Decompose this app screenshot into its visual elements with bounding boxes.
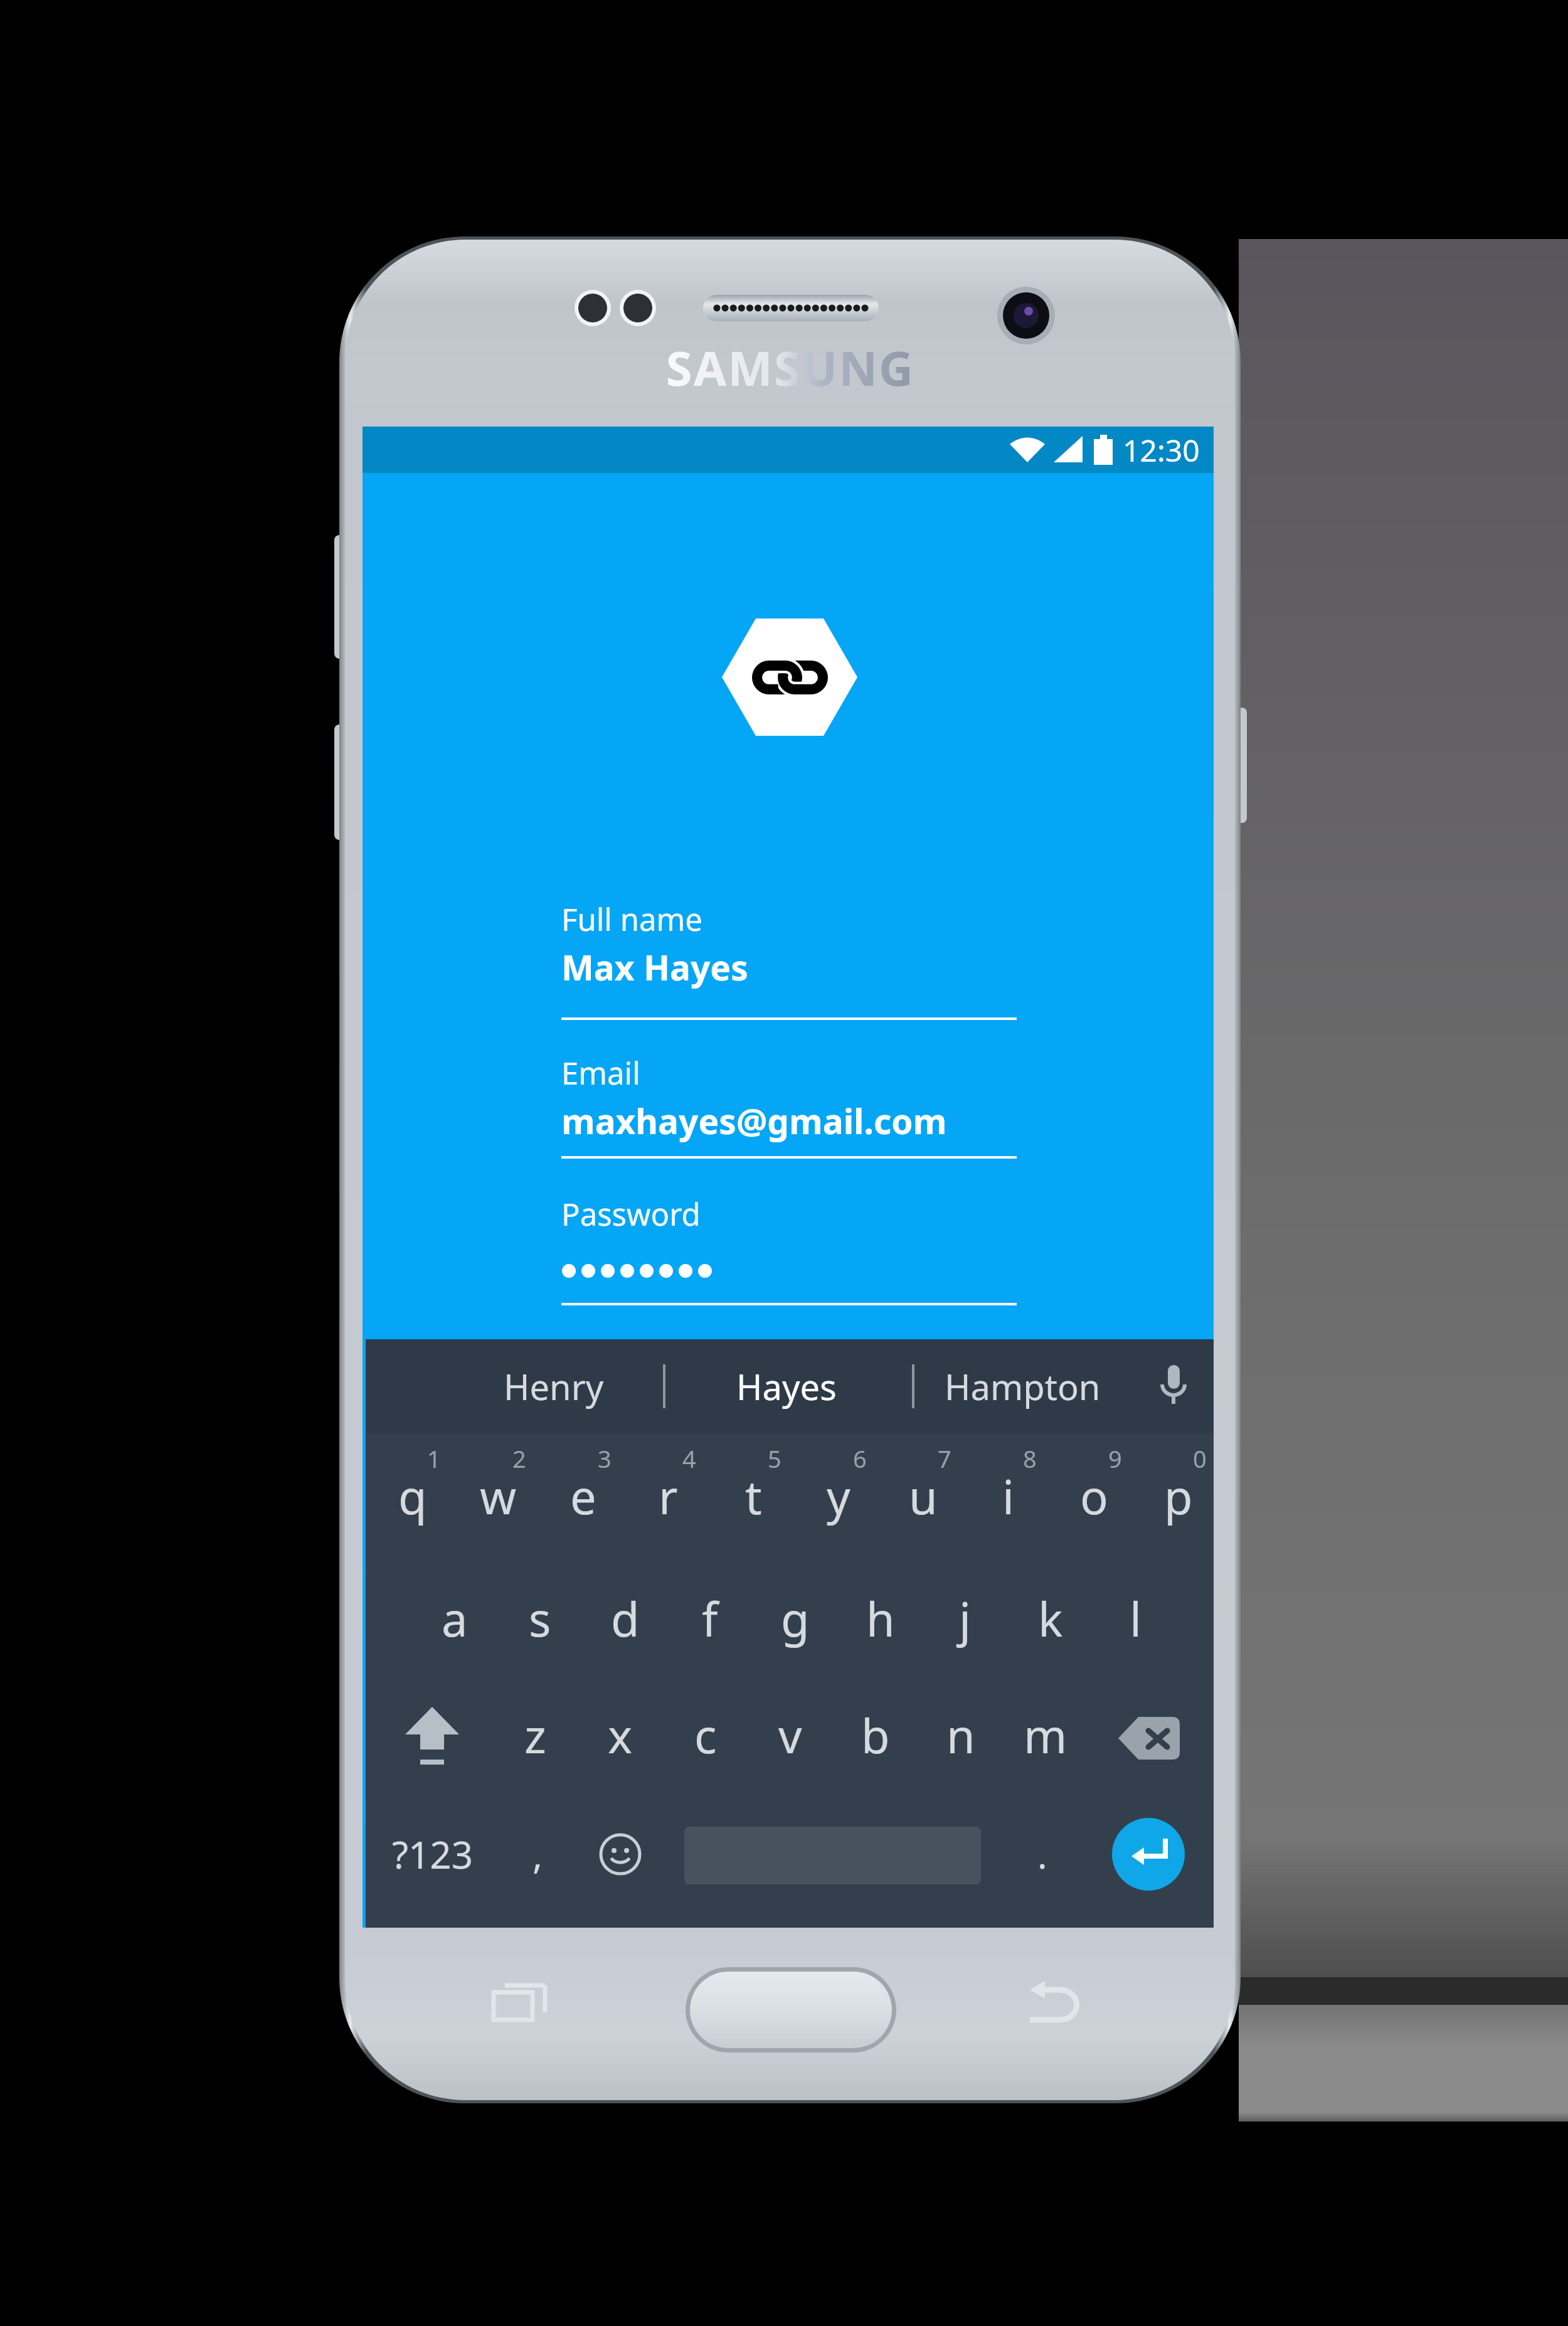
staticText: 8 — [1023, 1442, 1037, 1475]
staticText: q — [398, 1465, 427, 1528]
staticText: x — [608, 1704, 633, 1767]
staticText: 6 — [853, 1442, 867, 1475]
staticText: p — [1164, 1465, 1193, 1528]
staticText: o — [1080, 1465, 1108, 1528]
button[interactable]: Full name — [561, 888, 1017, 1020]
staticText: maxhayes@gmail.com — [561, 1097, 947, 1144]
staticText: r — [659, 1465, 678, 1528]
button[interactable]: Recents — [492, 1983, 553, 2021]
staticText: , — [532, 1829, 543, 1880]
staticText: z — [524, 1704, 546, 1767]
staticText: 3 — [598, 1442, 612, 1475]
button[interactable]: j — [923, 1541, 1008, 1679]
staticText: c — [694, 1704, 717, 1767]
button[interactable]: 1 — [370, 1418, 455, 1556]
button[interactable]: 0 — [1136, 1418, 1221, 1556]
button[interactable]: k — [1008, 1541, 1093, 1679]
staticText: y — [827, 1465, 850, 1528]
button[interactable]: s — [497, 1541, 583, 1679]
button[interactable]: a — [412, 1541, 497, 1679]
button[interactable]: v — [748, 1657, 833, 1795]
button[interactable]: c — [663, 1657, 748, 1795]
button[interactable]: Password — [561, 1183, 1017, 1305]
button[interactable]: 5 — [711, 1418, 796, 1556]
button[interactable]: Emoji — [570, 1785, 670, 1923]
button[interactable]: 3 — [541, 1418, 626, 1556]
staticText: 4 — [682, 1442, 696, 1475]
staticText: m — [1024, 1704, 1067, 1767]
staticText: Henry — [504, 1362, 604, 1410]
staticText: g — [781, 1587, 810, 1650]
staticText: n — [946, 1704, 975, 1767]
staticText: 9 — [1108, 1442, 1122, 1475]
button[interactable]: Email — [561, 1042, 1017, 1159]
staticText: s — [529, 1587, 551, 1650]
staticText: h — [866, 1587, 895, 1650]
staticText: e — [570, 1465, 596, 1528]
staticText: Hayes — [736, 1362, 837, 1410]
staticText: f — [702, 1587, 718, 1650]
button[interactable]: Back — [1021, 1983, 1086, 2022]
staticText: b — [861, 1704, 890, 1767]
staticText: Max Hayes — [561, 943, 748, 990]
staticText: Password — [561, 1193, 701, 1235]
button[interactable]: Voice input — [1123, 1339, 1224, 1433]
staticText: l — [1130, 1587, 1142, 1650]
staticText: j — [959, 1587, 972, 1650]
staticText: 2 — [512, 1442, 526, 1475]
button[interactable]: x — [578, 1657, 663, 1795]
staticText: 7 — [938, 1442, 951, 1475]
button[interactable]: 2 — [455, 1418, 541, 1556]
staticText: w — [480, 1465, 517, 1528]
button[interactable]: g — [753, 1541, 838, 1679]
staticText: 12:30 — [1123, 430, 1200, 470]
staticText: SAMSUNG — [659, 335, 922, 400]
staticText: u — [909, 1465, 938, 1528]
staticText: i — [1002, 1465, 1015, 1528]
button[interactable]: 7 — [881, 1418, 966, 1556]
button[interactable]: 8 — [966, 1418, 1051, 1556]
button[interactable]: l — [1093, 1541, 1179, 1679]
button[interactable]: f — [667, 1541, 753, 1679]
staticText: Email — [561, 1052, 640, 1094]
button[interactable]: Henry — [472, 1339, 635, 1433]
staticText: . — [1037, 1830, 1047, 1879]
button[interactable]: Delete — [1093, 1669, 1205, 1807]
button[interactable]: n — [918, 1657, 1004, 1795]
staticText: Hampton — [945, 1362, 1101, 1410]
staticText: 1 — [427, 1442, 441, 1475]
button[interactable]: Hampton — [928, 1339, 1116, 1433]
staticText: v — [778, 1704, 802, 1767]
button[interactable]: d — [583, 1541, 668, 1679]
staticText: ?123 — [392, 1829, 473, 1880]
button[interactable]: Home — [690, 1972, 892, 2048]
button[interactable]: b — [833, 1657, 918, 1795]
button[interactable]: h — [838, 1541, 923, 1679]
button[interactable]: Shift — [376, 1669, 489, 1807]
button[interactable]: 9 — [1051, 1418, 1136, 1556]
staticText: d — [611, 1587, 640, 1650]
staticText: 0 — [1193, 1442, 1207, 1475]
staticText: a — [442, 1587, 468, 1650]
button[interactable]: , — [494, 1785, 581, 1923]
button[interactable]: 6 — [796, 1418, 881, 1556]
staticText: t — [745, 1465, 762, 1528]
button[interactable]: z — [492, 1657, 578, 1795]
button[interactable]: . — [999, 1785, 1086, 1923]
button[interactable]: m — [1003, 1657, 1088, 1795]
button[interactable]: Hayes — [705, 1339, 868, 1433]
staticText: 5 — [768, 1442, 781, 1475]
staticText: k — [1038, 1587, 1063, 1650]
button[interactable]: 4 — [625, 1418, 711, 1556]
staticText: Full name — [561, 898, 702, 940]
button[interactable]: ?123 — [354, 1785, 511, 1923]
button[interactable]: Enter — [1112, 1818, 1185, 1891]
